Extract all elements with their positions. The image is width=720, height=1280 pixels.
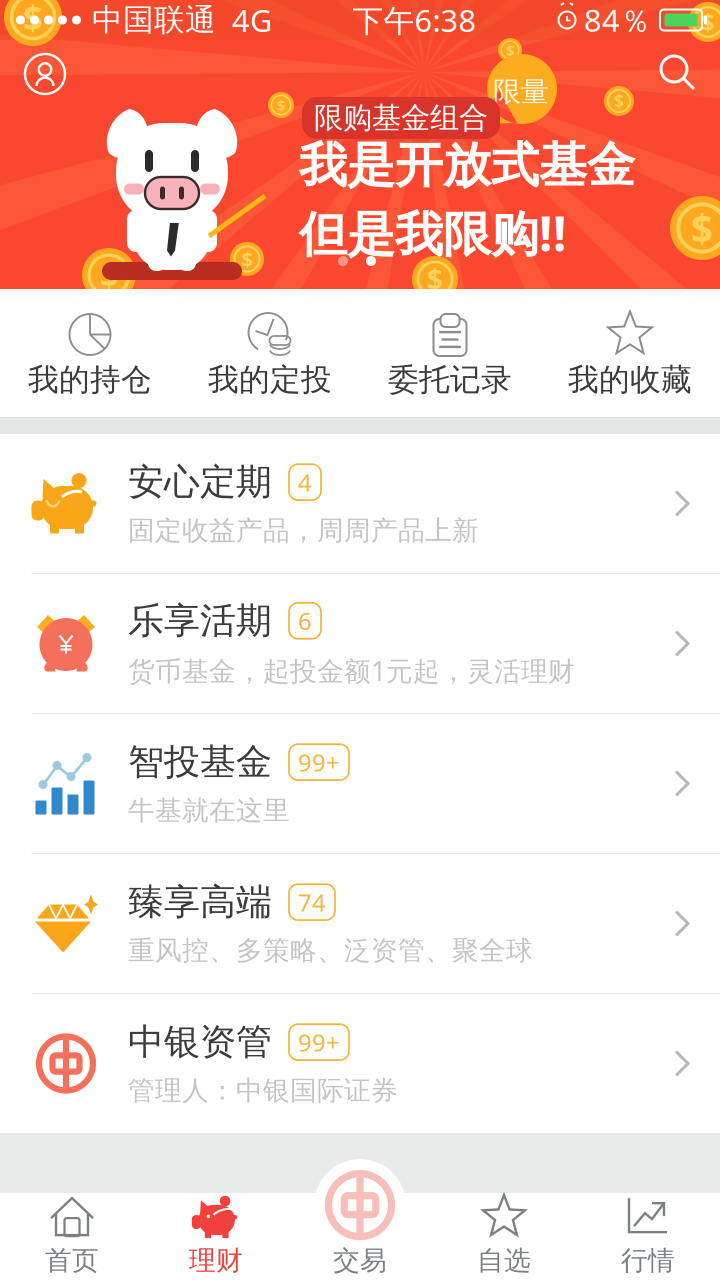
staticText: 99+ — [298, 746, 340, 778]
staticText: 限购基金组合 — [314, 100, 488, 136]
staticText: 货币基金，起投金额1元起，灵活理财 — [128, 653, 575, 688]
staticText: 4 — [298, 466, 312, 498]
button[interactable]: 我的定投 — [180, 288, 360, 417]
staticText: $ — [23, 0, 43, 40]
staticText: 交易 — [333, 1244, 387, 1277]
staticText: 理财 — [189, 1244, 243, 1277]
staticText: 首页 — [45, 1244, 99, 1277]
staticText: 行情 — [621, 1244, 675, 1277]
staticText: 臻享高端 — [128, 880, 272, 924]
button[interactable]: 行情 — [576, 1193, 720, 1279]
button[interactable]: 首页 — [0, 1193, 144, 1279]
staticText: 中银资管 — [128, 1020, 272, 1064]
button[interactable]: 安心定期 — [0, 434, 720, 573]
staticText: 委托记录 — [388, 361, 512, 398]
staticText: 99+ — [298, 1026, 340, 1058]
staticText: 我的定投 — [208, 361, 332, 398]
button[interactable]: Account — [16, 45, 74, 103]
button[interactable]: 自选 — [432, 1193, 576, 1279]
staticText: $ — [691, 202, 713, 254]
staticText: $ — [701, 6, 715, 38]
button[interactable]: 智投基金 — [0, 714, 720, 853]
staticText: 固定收益产品，周周产品上新 — [128, 514, 479, 547]
staticText: $ — [427, 260, 443, 298]
staticText: $ — [614, 89, 624, 112]
staticText: 中国联通 — [92, 1, 216, 39]
button[interactable]: 臻享高端 — [0, 854, 720, 993]
button[interactable]: 我的收藏 — [540, 288, 720, 417]
staticText: 我的收藏 — [568, 361, 692, 398]
button[interactable]: 理财 — [144, 1193, 288, 1279]
staticText: 我是开放式基金 — [299, 136, 635, 195]
staticText: 74 — [298, 886, 326, 918]
staticText: 6 — [298, 605, 312, 637]
staticText: 安心定期 — [128, 460, 272, 504]
staticText: 但是我限购!! — [299, 201, 567, 265]
staticText: $ — [241, 246, 252, 272]
staticText: $ — [100, 254, 118, 296]
staticText: 乐享活期 — [128, 599, 272, 643]
staticText: 牛基就在这里 — [128, 794, 290, 827]
staticText: 下午6:38 — [352, 0, 476, 40]
staticText: 自选 — [477, 1244, 531, 1277]
staticText: $ — [277, 95, 285, 115]
button[interactable]: 中银资管 — [0, 994, 720, 1133]
button[interactable]: 委托记录 — [360, 288, 540, 417]
button[interactable]: 交易 — [288, 1193, 432, 1280]
button[interactable]: 我的持仓 — [0, 288, 180, 417]
staticText: 智投基金 — [128, 740, 272, 784]
staticText: 我的持仓 — [28, 361, 152, 398]
button[interactable]: 乐享活期 — [0, 574, 720, 713]
staticText: 限量 — [493, 75, 549, 109]
staticText: 4G — [232, 0, 272, 40]
staticText: $ — [506, 40, 514, 60]
staticText: 84％ — [584, 0, 651, 40]
button[interactable]: Search — [649, 44, 707, 102]
staticText: 管理人：中银国际证券 — [128, 1074, 398, 1107]
staticText: 重风控、多策略、泛资管、聚全球 — [128, 934, 533, 967]
